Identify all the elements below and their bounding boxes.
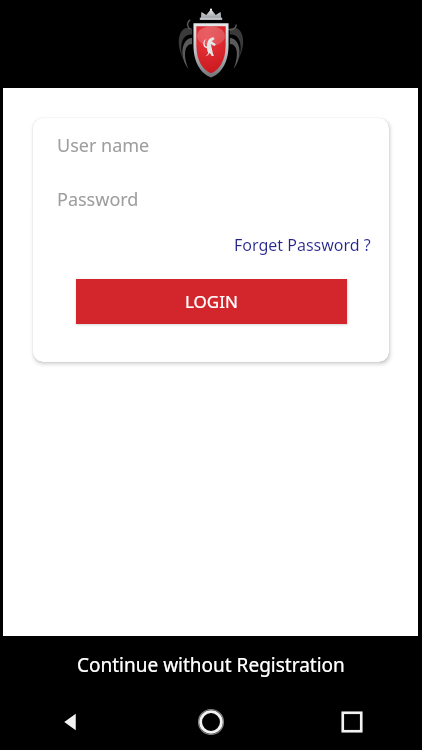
button[interactable]: User name — [33, 118, 389, 172]
button[interactable]: Back — [0, 694, 140, 750]
staticText: User name — [57, 133, 150, 158]
button[interactable]: Continue without Registration — [0, 636, 422, 694]
other: App logo crest — [166, 5, 256, 83]
staticText: Forget Password ? — [234, 234, 371, 256]
staticText: Password — [57, 187, 139, 212]
staticText: LOGIN — [185, 290, 238, 313]
button[interactable]: LOGIN — [76, 279, 347, 324]
staticText: Continue without Registration — [77, 652, 345, 678]
button[interactable]: Home — [140, 694, 281, 750]
button[interactable]: Password — [33, 172, 389, 226]
button[interactable]: Recent apps — [281, 694, 422, 750]
button[interactable]: Forget Password ? — [216, 230, 389, 260]
